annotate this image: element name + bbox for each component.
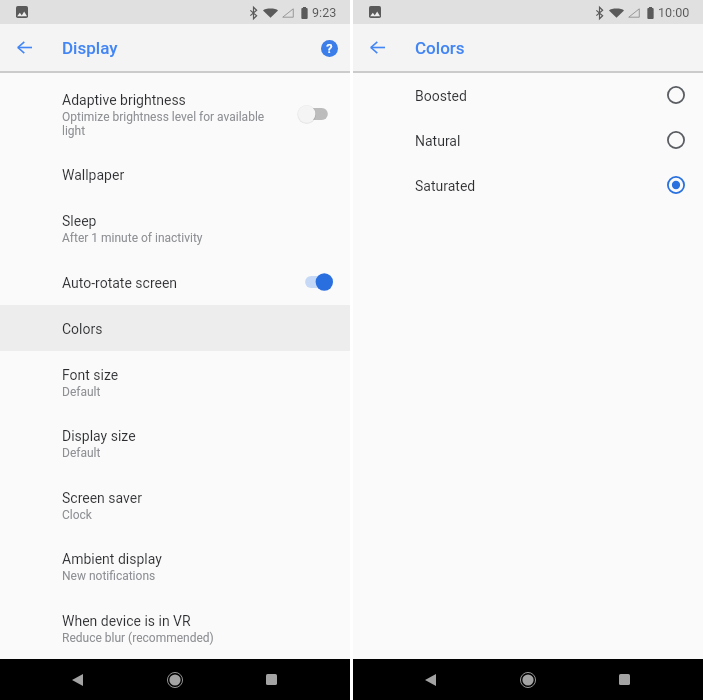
staticText: Default [62, 446, 101, 460]
staticText: New notifications [62, 569, 156, 583]
staticText: Display size [62, 428, 136, 444]
staticText: Ambient display [62, 551, 162, 567]
button[interactable]: Saturated [353, 163, 703, 208]
button[interactable]: Recent apps [602, 659, 646, 700]
staticText: Font size [62, 367, 119, 383]
staticText: Boosted [415, 88, 667, 104]
button[interactable]: Navigate up [0, 24, 48, 71]
button[interactable]: Natural [353, 118, 703, 163]
staticText: After 1 minute of inactivity [62, 231, 203, 245]
staticText: Reduce blur (recommended) [62, 631, 214, 645]
button[interactable]: Display size [0, 412, 350, 474]
staticText: Display [62, 38, 118, 58]
staticText: 10:00 [658, 5, 690, 20]
staticText: 9:23 [312, 5, 337, 20]
staticText: Natural [415, 133, 667, 149]
button[interactable]: Recent apps [249, 659, 293, 700]
staticText: Auto-rotate screen [62, 275, 178, 291]
staticText: When device is in VR [62, 613, 191, 629]
button[interactable]: Help [309, 28, 349, 68]
button[interactable]: Navigate up [353, 24, 401, 71]
button[interactable]: Font size [0, 351, 350, 412]
staticText: Default [62, 385, 101, 399]
staticText: Saturated [415, 178, 667, 194]
staticText: Wallpaper [62, 167, 125, 183]
button[interactable]: Back [408, 659, 452, 700]
button[interactable]: Screen saver [0, 474, 350, 535]
staticText: Screen saver [62, 490, 142, 506]
staticText: Colors [415, 38, 465, 58]
button[interactable]: Auto-rotate screen [0, 259, 350, 305]
staticText: Clock [62, 508, 92, 522]
staticText: ? [326, 41, 333, 56]
button[interactable]: When device is in VR [0, 597, 350, 658]
button[interactable]: Wallpaper [0, 151, 350, 197]
button[interactable]: Adaptive brightness [0, 76, 350, 151]
staticText: Adaptive brightness [62, 92, 186, 108]
button[interactable]: Home [153, 659, 197, 700]
button[interactable]: Ambient display [0, 535, 350, 597]
staticText: Sleep [62, 213, 97, 229]
button[interactable]: Boosted [353, 73, 703, 118]
button[interactable]: Back [55, 659, 99, 700]
button[interactable]: Sleep [0, 197, 350, 259]
staticText: Optimize brightness level for available … [62, 110, 270, 138]
button[interactable]: Colors [0, 305, 350, 351]
button[interactable]: Home [506, 659, 550, 700]
staticText: Colors [62, 321, 103, 337]
